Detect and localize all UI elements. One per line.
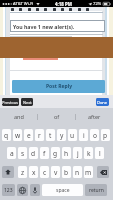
staticText: c [43,168,47,177]
button[interactable]: l [95,147,104,159]
staticText: v [54,168,58,177]
button[interactable]: i [79,129,88,141]
button[interactable]: Dictate [30,184,40,196]
staticText: d [31,149,36,158]
button[interactable]: Toolbar action [19,8,22,11]
staticText: y [60,131,64,140]
staticText: Post Reply [46,83,72,90]
button[interactable]: u [68,129,77,141]
button[interactable]: Toolbar action [78,8,81,11]
button[interactable]: s [18,147,27,159]
button[interactable]: Previous [2,98,19,106]
button[interactable]: Switch keyboard [17,184,28,196]
staticText: f [43,149,46,158]
button[interactable]: m [84,166,93,178]
button[interactable]: Toolbar action [86,8,89,11]
staticText: Done [97,100,108,105]
staticText: You have 1 new alert(s). [13,23,75,30]
button[interactable]: t [46,129,55,141]
button[interactable]: Next [21,98,33,106]
button[interactable]: x [29,166,38,178]
staticText: space [56,187,70,194]
button[interactable]: b [62,166,71,178]
staticText: u [70,131,75,140]
staticText: h [64,149,69,158]
staticText: k [87,149,91,158]
staticText: o [93,131,97,140]
button[interactable]: Toolbar action [44,8,47,11]
button[interactable]: w [13,129,22,141]
staticText: q [4,131,9,140]
staticText: 4:18 PM [55,1,72,7]
button[interactable]: Shift [2,166,14,178]
staticText: e [27,131,31,140]
staticText: and [14,113,24,120]
button[interactable]: g [51,147,60,159]
staticText: j [77,149,79,158]
button[interactable]: after [76,108,113,125]
button[interactable]: p [101,129,110,141]
button[interactable]: y [57,129,66,141]
staticText: g [53,149,58,158]
staticText: Previous [2,100,19,105]
staticText: x [32,168,36,177]
button[interactable]: Toolbar action [28,8,31,11]
staticText: r [38,131,41,140]
button[interactable]: space [42,184,83,196]
button[interactable]: j [73,147,82,159]
staticText: l [99,149,101,158]
button[interactable]: 123 [2,184,15,196]
button[interactable]: You have 1 new alert(s). [10,20,105,32]
button[interactable]: Post Reply [12,80,105,93]
button[interactable]: Done [96,98,109,106]
button[interactable]: r [35,129,44,141]
button[interactable]: Toolbar action [36,8,39,11]
button[interactable]: o [90,129,99,141]
staticText: b [64,168,69,177]
button[interactable]: q [2,129,11,141]
button[interactable]: e [24,129,33,141]
button[interactable]: a [7,147,16,159]
button[interactable]: Toolbar action [61,8,64,11]
staticText: n [75,168,80,177]
staticText: 123 [4,187,13,194]
button[interactable]: n [73,166,82,178]
button[interactable]: f [40,147,49,159]
staticText: a [10,149,14,158]
staticText: m [85,168,92,177]
button[interactable]: d [29,147,38,159]
staticText: z [21,168,25,177]
staticText: return [89,187,104,194]
staticText: 72% [93,1,102,7]
button[interactable]: Toolbar action [53,8,56,11]
staticText: t [49,131,52,140]
staticText: Next [23,100,32,105]
staticText: i [83,131,85,140]
button[interactable]: v [51,166,60,178]
staticText: w [15,131,21,140]
staticText: after [88,113,101,120]
button[interactable]: Backspace [97,166,109,178]
button[interactable]: h [62,147,71,159]
staticText: AT&T Wi-Fi [13,1,34,7]
button[interactable]: c [40,166,49,178]
button[interactable]: k [84,147,93,159]
staticText: s [21,149,25,158]
staticText: of [54,113,60,120]
button[interactable]: and [0,108,37,125]
button[interactable]: return [85,184,107,196]
button[interactable]: of [38,108,75,125]
staticText: p [103,131,108,140]
button[interactable]: z [18,166,27,178]
button[interactable]: Toolbar action [11,8,14,11]
button[interactable]: Toolbar action [69,8,72,11]
